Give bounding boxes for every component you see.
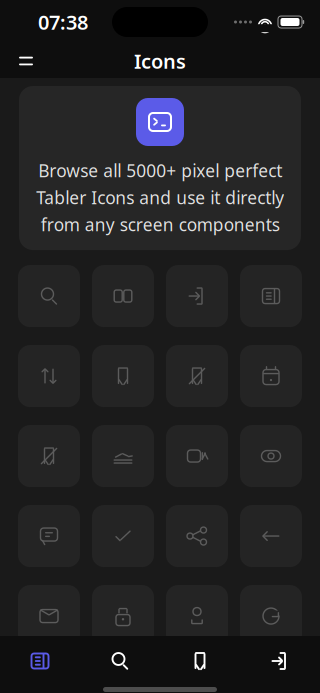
button[interactable] <box>92 425 154 487</box>
staticText: Icons <box>134 48 186 74</box>
button[interactable] <box>166 265 228 327</box>
button[interactable] <box>18 345 80 407</box>
button[interactable] <box>166 345 228 407</box>
button[interactable] <box>18 265 80 327</box>
staticText: Browse all 5000+ pixel perfect Tabler Ic… <box>36 159 284 236</box>
button[interactable] <box>18 425 80 487</box>
button[interactable] <box>166 425 228 487</box>
button[interactable] <box>240 505 302 567</box>
button[interactable] <box>240 425 302 487</box>
button[interactable] <box>92 665 154 693</box>
button[interactable] <box>166 585 228 647</box>
button[interactable] <box>92 345 154 407</box>
button[interactable] <box>166 505 228 567</box>
button[interactable]: Menu <box>6 44 46 78</box>
button[interactable]: Login <box>240 639 320 683</box>
button[interactable] <box>240 265 302 327</box>
button[interactable] <box>92 265 154 327</box>
button[interactable] <box>166 665 228 693</box>
button[interactable] <box>240 665 302 693</box>
button[interactable] <box>18 505 80 567</box>
button[interactable] <box>18 585 80 647</box>
button[interactable]: Search <box>80 639 160 683</box>
button[interactable] <box>18 665 80 693</box>
staticText: 07:38 <box>38 9 88 35</box>
button[interactable] <box>240 585 302 647</box>
button[interactable]: Bookmarks <box>160 639 240 683</box>
button[interactable] <box>240 345 302 407</box>
button[interactable] <box>92 585 154 647</box>
button[interactable] <box>92 505 154 567</box>
button[interactable]: Icons <box>0 639 80 683</box>
